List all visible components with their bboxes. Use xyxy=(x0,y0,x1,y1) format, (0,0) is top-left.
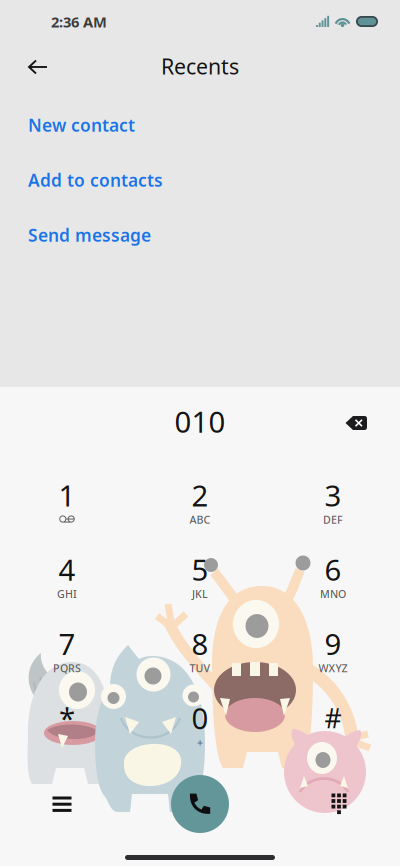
button[interactable]: 0 xyxy=(133,694,266,754)
staticText: 5 xyxy=(191,550,208,589)
button[interactable]: 3 xyxy=(266,471,399,531)
staticText: DEF xyxy=(323,512,343,527)
button[interactable]: Menu xyxy=(39,781,85,827)
button[interactable]: 7 xyxy=(0,620,133,680)
button[interactable]: New contact xyxy=(0,110,400,140)
button[interactable]: Add to contacts xyxy=(0,165,400,195)
staticText: New contact xyxy=(28,113,135,136)
button[interactable]: 5 xyxy=(133,545,266,605)
button[interactable]: 9 xyxy=(266,620,399,680)
staticText: PQRS xyxy=(53,661,81,675)
button[interactable]: Delete xyxy=(332,403,380,443)
button[interactable]: 8 xyxy=(133,620,266,680)
button[interactable]: 2 xyxy=(133,471,266,531)
staticText: # xyxy=(324,700,341,736)
staticText: 7 xyxy=(58,624,75,663)
button[interactable]: # xyxy=(266,694,399,754)
staticText: + xyxy=(197,735,203,749)
button[interactable]: 4 xyxy=(0,545,133,605)
staticText: 2:36 AM xyxy=(51,12,107,31)
button[interactable]: * xyxy=(0,694,133,754)
staticText: WXYZ xyxy=(318,661,347,675)
staticText: 3 xyxy=(324,475,341,514)
staticText: 0 xyxy=(191,698,208,737)
staticText: Add to contacts xyxy=(28,168,163,191)
staticText: MNO xyxy=(320,587,346,601)
staticText: JKL xyxy=(192,587,208,601)
staticText: 4 xyxy=(58,550,75,589)
staticText: Recents xyxy=(161,52,239,80)
staticText: ABC xyxy=(189,512,210,527)
staticText: Send message xyxy=(28,223,151,246)
staticText: GHI xyxy=(57,587,77,601)
staticText: 8 xyxy=(191,624,208,663)
button[interactable]: 1 xyxy=(0,471,133,531)
staticText: 1 xyxy=(58,475,75,514)
button[interactable]: Call xyxy=(171,775,229,833)
button[interactable]: Keypad xyxy=(316,781,362,827)
button[interactable]: Send message xyxy=(0,220,400,250)
staticText: TUV xyxy=(189,661,210,675)
staticText: 010 xyxy=(174,402,225,441)
button[interactable]: Back xyxy=(16,45,60,89)
staticText: 2 xyxy=(191,475,208,514)
button[interactable]: 6 xyxy=(266,545,399,605)
staticText: 6 xyxy=(324,550,341,589)
staticText: * xyxy=(59,698,75,737)
staticText: 9 xyxy=(324,624,341,663)
